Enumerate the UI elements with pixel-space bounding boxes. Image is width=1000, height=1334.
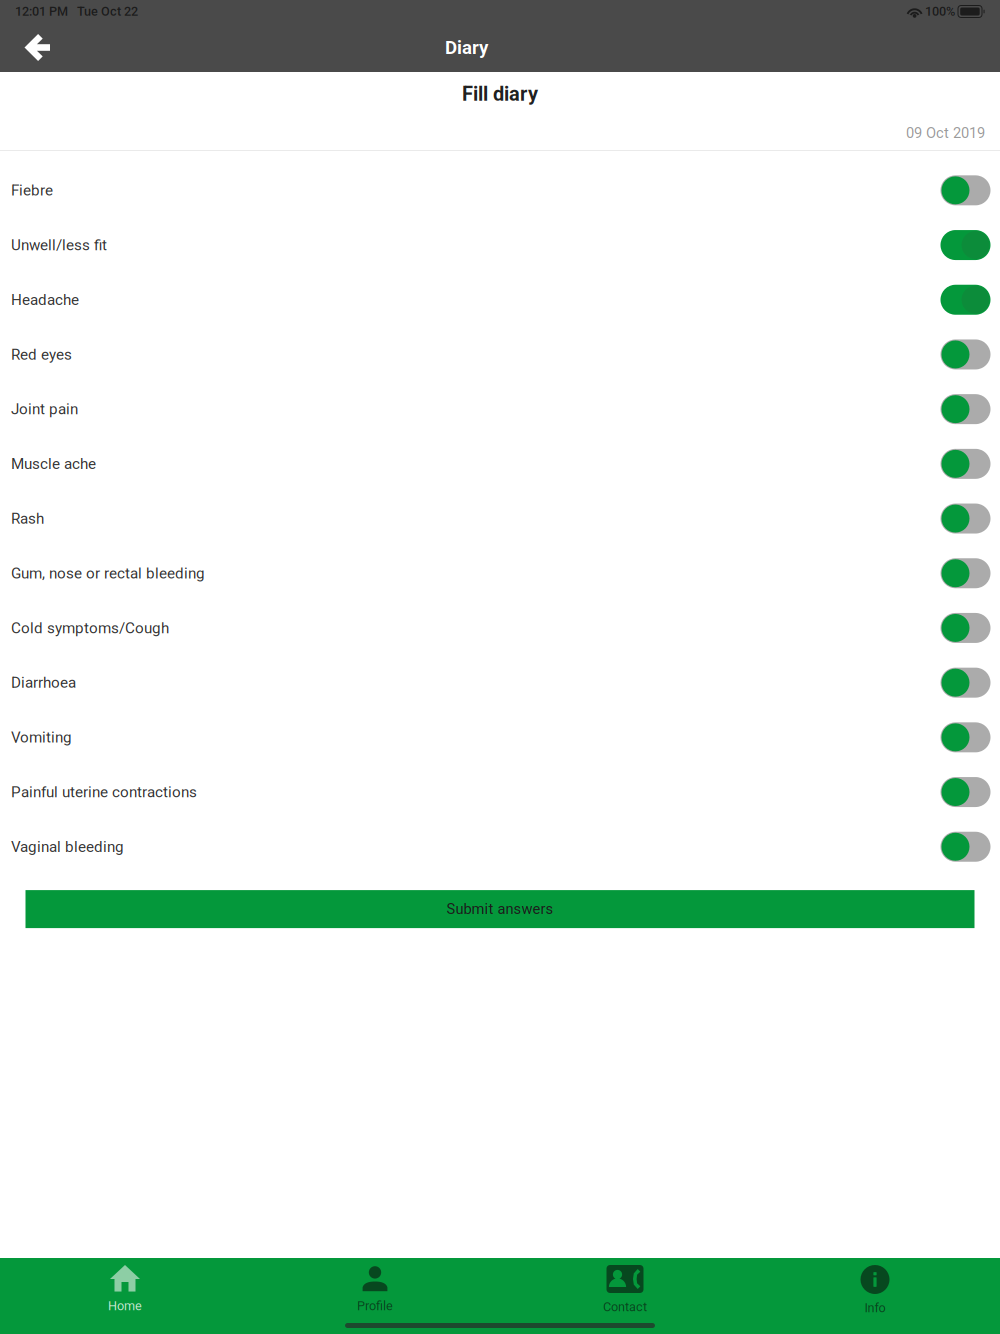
staticText: Profile <box>357 1299 393 1313</box>
button[interactable]: Vomiting <box>0 710 1000 765</box>
button[interactable]: Gum, nose or rectal bleeding <box>0 546 1000 601</box>
staticText: Info <box>864 1301 885 1315</box>
button[interactable]: Cold symptoms/Cough <box>0 601 1000 655</box>
button[interactable]: Joint pain <box>0 382 1000 436</box>
button[interactable]: Contact <box>500 1258 750 1334</box>
button[interactable]: Red eyes <box>0 327 1000 382</box>
button[interactable]: Muscle ache <box>0 436 1000 491</box>
staticText: Cold symptoms/Cough <box>11 619 169 637</box>
staticText: Submit answers <box>446 900 553 918</box>
staticText: 100% <box>922 4 958 19</box>
staticText: 12:01 PM <box>15 4 68 19</box>
button[interactable]: Vaginal bleeding <box>0 819 1000 874</box>
staticText: Diary <box>445 37 488 58</box>
button[interactable]: Unwell/less fit <box>0 218 1000 272</box>
button[interactable]: Profile <box>250 1258 500 1334</box>
staticText: Vomiting <box>11 728 72 746</box>
button[interactable]: Painful uterine contractions <box>0 765 1000 819</box>
button[interactable]: Diarrhoea <box>0 655 1000 710</box>
staticText: Tue Oct 22 <box>77 4 138 19</box>
staticText: Fill diary <box>462 82 538 106</box>
staticText: Gum, nose or rectal bleeding <box>11 564 205 582</box>
staticText: Unwell/less fit <box>11 236 107 254</box>
staticText: Rash <box>11 510 44 527</box>
button[interactable]: Home <box>0 1258 250 1334</box>
staticText: Vaginal bleeding <box>11 838 124 856</box>
staticText: 09 Oct 2019 <box>906 124 985 142</box>
staticText: Joint pain <box>11 400 78 418</box>
button[interactable]: Fiebre <box>0 163 1000 218</box>
staticText: Red eyes <box>11 345 72 363</box>
button[interactable]: Rash <box>0 491 1000 546</box>
staticText: Headache <box>11 291 79 309</box>
button[interactable]: Back <box>0 23 75 72</box>
staticText: Home <box>108 1299 142 1313</box>
staticText: Muscle ache <box>11 455 96 473</box>
staticText: Contact <box>603 1300 647 1314</box>
button[interactable]: Submit answers <box>25 890 974 928</box>
button[interactable]: Headache <box>0 272 1000 327</box>
staticText: Painful uterine contractions <box>11 783 197 801</box>
staticText: Fiebre <box>11 181 53 199</box>
staticText: Diarrhoea <box>11 674 76 691</box>
button[interactable]: Info <box>750 1258 1000 1334</box>
